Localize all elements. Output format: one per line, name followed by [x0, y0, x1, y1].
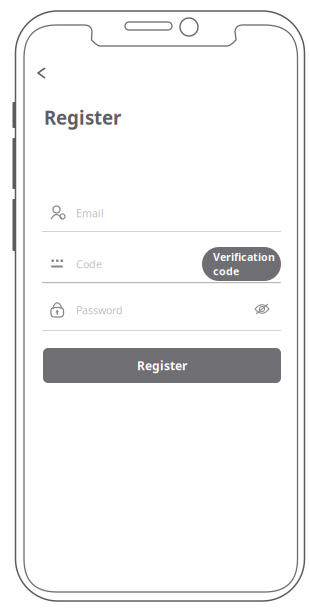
button[interactable]: Verification	[202, 247, 281, 281]
button[interactable]: Register	[43, 348, 281, 383]
staticText: Code	[76, 257, 102, 271]
button[interactable]: Show password	[250, 298, 274, 320]
staticText: code	[213, 264, 239, 278]
staticText: Email	[76, 206, 104, 220]
staticText: Verification	[213, 250, 275, 264]
staticText: Password	[76, 303, 123, 317]
button[interactable]: Back	[32, 62, 51, 84]
staticText: Register	[137, 357, 187, 373]
staticText: Register	[44, 105, 121, 130]
